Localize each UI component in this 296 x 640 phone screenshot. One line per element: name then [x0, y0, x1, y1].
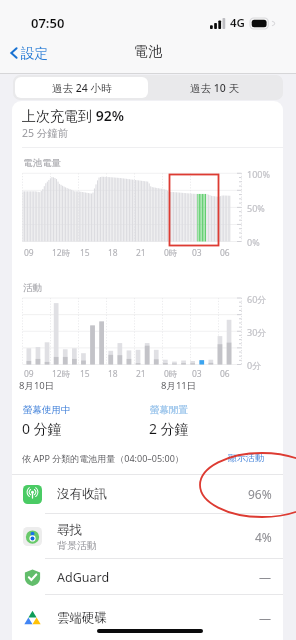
staticText: 18	[108, 368, 118, 380]
staticText: 0分	[247, 359, 262, 371]
staticText: 螢幕閒置	[150, 404, 188, 416]
staticText: 25 分鐘前	[22, 126, 69, 140]
staticText: AdGuard	[57, 569, 110, 586]
staticText: 電池	[134, 43, 162, 61]
staticText: 4%	[255, 529, 272, 545]
staticText: 18	[108, 247, 118, 259]
staticText: 螢幕使用中	[23, 404, 71, 416]
staticText: 8月10日	[19, 379, 55, 392]
button[interactable]: 尋找	[12, 514, 283, 559]
staticText: 03	[192, 368, 202, 380]
staticText: 100%	[247, 168, 270, 180]
staticText: 電池電量	[23, 157, 61, 169]
staticText: 過去 10 天	[190, 81, 239, 95]
staticText: —	[259, 610, 272, 626]
staticText: 06	[220, 247, 230, 259]
staticText: 0 分鐘	[22, 419, 62, 438]
staticText: 雲端硬碟	[57, 610, 107, 626]
staticText: 4G	[230, 15, 245, 31]
staticText: 60分	[247, 293, 267, 305]
button[interactable]: 沒有收訊	[12, 474, 283, 514]
staticText: 8月11日	[161, 379, 197, 392]
staticText: 21	[136, 368, 146, 380]
staticText: 0%	[247, 236, 260, 248]
button[interactable]: 過去 10 天	[148, 77, 281, 98]
staticText: 15	[80, 368, 90, 380]
staticText: 96%	[248, 486, 272, 502]
button[interactable]: 雲端硬碟	[12, 595, 283, 640]
staticText: 依 APP 分類的電池用量（04:00–05:00）	[22, 452, 184, 464]
button[interactable]: 顯示活動	[228, 452, 264, 463]
staticText: 30分	[247, 326, 267, 338]
staticText: 顯示活動	[228, 452, 264, 463]
staticText: 12時	[52, 368, 71, 380]
staticText: 過去 24 小時	[52, 81, 112, 95]
button[interactable]: AdGuard	[12, 559, 283, 595]
staticText: 07:50	[31, 14, 65, 32]
staticText: 0時	[164, 247, 178, 259]
staticText: 50%	[247, 202, 265, 214]
staticText: 上次充電到 92%	[22, 106, 124, 125]
staticText: —	[259, 569, 272, 585]
staticText: 06	[220, 368, 230, 380]
staticText: 尋找	[57, 522, 82, 538]
staticText: 12時	[52, 247, 71, 259]
button[interactable]: 設定	[8, 42, 48, 64]
staticText: 設定	[21, 45, 48, 62]
staticText: 沒有收訊	[57, 486, 107, 502]
staticText: 活動	[23, 282, 42, 294]
staticText: 15	[80, 247, 90, 259]
button[interactable]: 過去 24 小時	[15, 77, 148, 98]
staticText: 03	[192, 247, 202, 259]
staticText: 背景活動	[57, 539, 97, 552]
staticText: 09	[24, 247, 34, 259]
staticText: 2 分鐘	[149, 419, 189, 438]
staticText: 09	[24, 368, 34, 380]
staticText: 0時	[164, 368, 178, 380]
staticText: 21	[136, 247, 146, 259]
